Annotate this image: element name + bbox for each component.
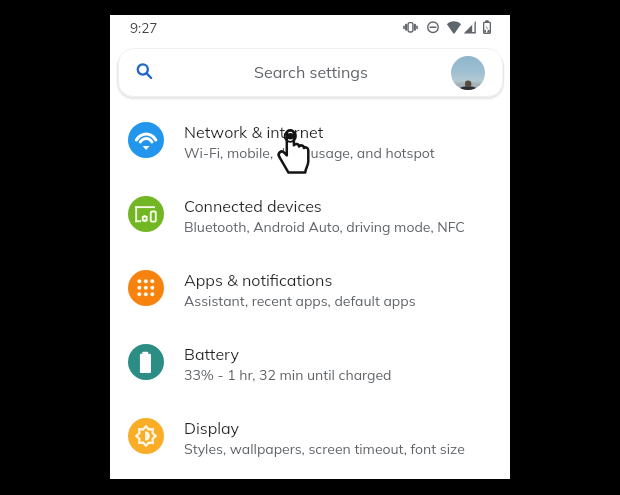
staticText: 9:27 xyxy=(130,19,158,36)
staticText: Assistant, recent apps, default apps xyxy=(184,292,416,310)
button[interactable]: Account xyxy=(451,56,485,90)
staticText: Wi-Fi, mobile, data usage, and hotspot xyxy=(184,144,435,162)
staticText: Apps & notifications xyxy=(184,270,333,290)
button[interactable]: Apps & notifications xyxy=(110,251,510,325)
staticText: Network & internet xyxy=(184,122,324,142)
staticText: Bluetooth, Android Auto, driving mode, N… xyxy=(184,218,465,236)
button[interactable]: Display xyxy=(110,399,510,473)
staticText: Battery xyxy=(184,344,239,364)
staticText: Display xyxy=(184,418,240,438)
staticText: Search settings xyxy=(254,62,368,82)
staticText: 33% - 1 hr, 32 min until charged xyxy=(184,366,392,384)
staticText: Styles, wallpapers, screen timeout, font… xyxy=(184,440,465,458)
button[interactable]: Search settings xyxy=(118,48,503,97)
button[interactable]: Battery xyxy=(110,325,510,399)
button[interactable]: Network & internet xyxy=(110,103,510,177)
button[interactable]: Connected devices xyxy=(110,177,510,251)
staticText: Connected devices xyxy=(184,196,322,216)
